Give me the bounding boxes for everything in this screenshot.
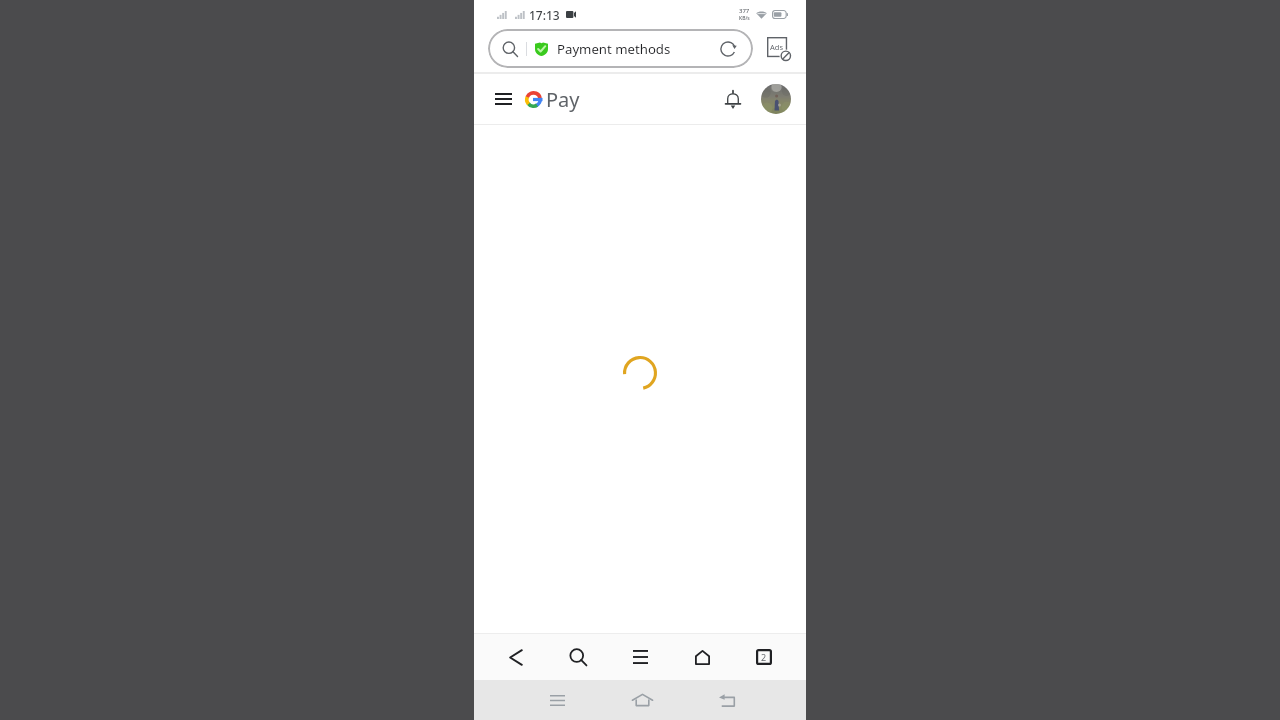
button[interactable]: Search [558, 637, 598, 677]
button[interactable]: Account [761, 84, 791, 114]
button[interactable]: Payment methods [488, 29, 753, 68]
staticText: Pay [546, 86, 580, 113]
button[interactable]: Home [682, 637, 722, 677]
button[interactable]: Back [710, 683, 744, 717]
staticText: 2 [761, 651, 767, 663]
button[interactable]: Back [496, 637, 536, 677]
staticText: 17:13 [529, 7, 560, 23]
button[interactable]: Menu [620, 637, 660, 677]
button[interactable]: Menu [495, 86, 521, 112]
staticText: Ads [770, 42, 783, 52]
button[interactable]: Tabs [744, 637, 784, 677]
button[interactable]: Home [625, 683, 659, 717]
button[interactable]: Recents [540, 683, 574, 717]
staticText: KB/s [739, 15, 750, 22]
button[interactable]: Block ads [766, 36, 792, 62]
staticText: 377 [739, 7, 750, 15]
staticText: Payment methods [557, 40, 671, 58]
button[interactable]: Notifications [719, 85, 747, 113]
